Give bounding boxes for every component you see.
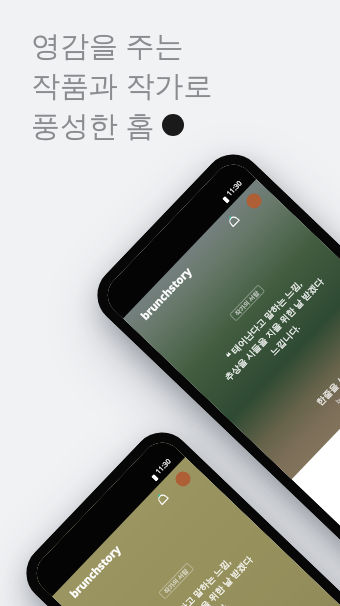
staticText: ❝ 태어난다고 말하는 느낌, 추상을 시들을 지을 위한 날 받겠다 느낍니다… bbox=[130, 532, 277, 606]
staticText: 한줄을 시험 bbox=[313, 364, 340, 407]
staticText: 작가의 서랍 bbox=[162, 567, 190, 595]
staticText: by 나른 bbox=[334, 385, 340, 405]
staticText: 작품과 작가로 bbox=[31, 65, 213, 105]
staticText: 영감을 주는 bbox=[31, 25, 184, 65]
staticText: ❝ 태어난다고 말하는 느낌, 추상을 시들을 지을 위한 날 받겠다 느낍니다… bbox=[201, 254, 340, 405]
staticText: 풍성한 홈 bbox=[31, 105, 155, 145]
staticText: brunchstory bbox=[66, 541, 124, 601]
staticText: 작가의 서랍 bbox=[233, 289, 261, 317]
staticText: brunchstory bbox=[137, 263, 195, 323]
staticText: 11:30 bbox=[154, 457, 173, 477]
staticText: 11:30 bbox=[225, 179, 244, 199]
